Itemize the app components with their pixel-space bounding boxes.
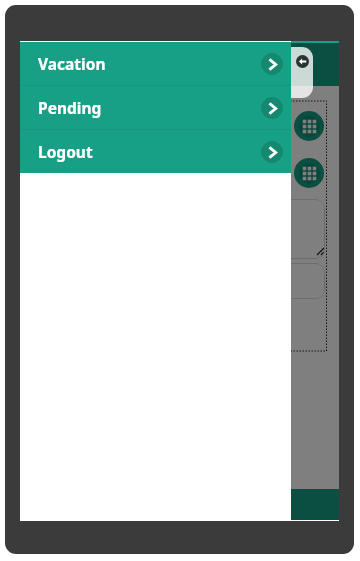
button[interactable]: Apps bbox=[27, 111, 57, 141]
staticText: Vacation bbox=[38, 53, 106, 74]
button[interactable]: Back bbox=[246, 47, 313, 98]
button[interactable]: Pending bbox=[20, 86, 291, 129]
button[interactable]: Apps bbox=[205, 158, 235, 188]
button[interactable]: Apps bbox=[116, 158, 146, 188]
staticText: Pending bbox=[38, 97, 102, 118]
button[interactable] bbox=[27, 199, 325, 259]
button[interactable]: Apps bbox=[294, 111, 324, 141]
button[interactable]: Logout bbox=[20, 130, 291, 173]
button[interactable] bbox=[27, 263, 325, 299]
button[interactable]: Vacation bbox=[20, 42, 291, 85]
staticText: Logout bbox=[38, 141, 93, 162]
button[interactable]: Apps bbox=[294, 158, 324, 188]
button[interactable]: Apps bbox=[27, 158, 57, 188]
